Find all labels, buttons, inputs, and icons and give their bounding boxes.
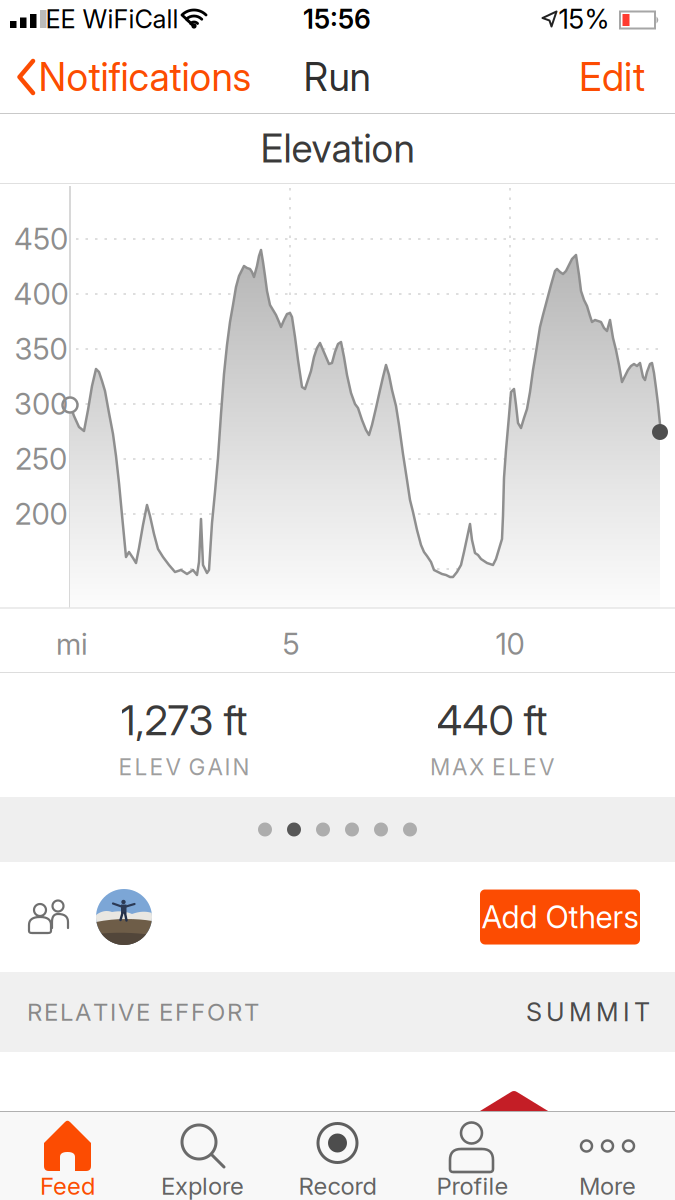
staticText: R E L A T I V E E F F O R T	[27, 998, 259, 1026]
staticText: 15%	[558, 3, 609, 35]
staticText: 5	[282, 627, 299, 661]
button[interactable]: Profile	[405, 1112, 540, 1200]
staticText: 15:56	[303, 3, 371, 35]
button[interactable]: Edit	[572, 55, 652, 98]
button[interactable]: Explore	[135, 1112, 270, 1200]
staticText: 10	[495, 627, 524, 661]
staticText: Elevation	[260, 126, 414, 171]
staticText: Edit	[579, 54, 645, 100]
staticText: EE WiFiCall	[45, 4, 178, 34]
staticText: 200	[14, 497, 67, 531]
staticText: Explore	[161, 1172, 244, 1200]
staticText: M A X E L E V	[430, 753, 554, 780]
staticText: 440 ft	[436, 696, 547, 744]
button[interactable]: More	[540, 1112, 675, 1200]
staticText: Notifications	[38, 54, 251, 100]
staticText: Record	[298, 1172, 376, 1200]
staticText: E L E V G A I N	[118, 753, 249, 780]
staticText: S U M M I T	[526, 997, 650, 1027]
staticText: 300	[14, 387, 68, 421]
staticText: Add Others	[481, 899, 638, 935]
staticText: Profile	[436, 1172, 508, 1200]
staticText: 350	[14, 332, 67, 366]
button[interactable]: Feed	[0, 1112, 135, 1200]
staticText: mi	[56, 627, 88, 661]
staticText: 1,273 ft	[120, 696, 247, 744]
staticText: 250	[15, 442, 67, 476]
staticText: More	[579, 1172, 636, 1200]
staticText: 450	[14, 222, 68, 256]
button[interactable]: Record	[270, 1112, 405, 1200]
staticText: Run	[303, 54, 370, 100]
staticText: 400	[13, 277, 68, 311]
staticText: Feed	[40, 1172, 95, 1200]
button[interactable]: Athlete photo	[96, 889, 152, 945]
button[interactable]: Add Others	[480, 889, 640, 944]
button[interactable]: Back to Notifications	[0, 55, 230, 98]
